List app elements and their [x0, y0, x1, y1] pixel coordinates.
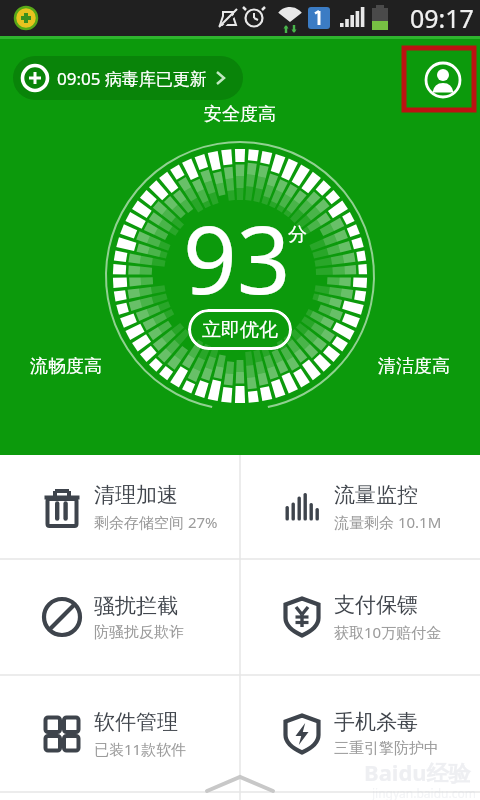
staticText: 流量监控: [334, 482, 418, 508]
staticText: 流量剩余 10.1M: [334, 512, 442, 532]
button[interactable]: 流量监控: [240, 455, 480, 559]
staticText: 骚扰拦截: [94, 593, 178, 619]
button[interactable]: 手机杀毒: [240, 675, 480, 792]
staticText: Baidu经验: [364, 757, 471, 787]
staticText: 立即优化: [202, 318, 278, 342]
staticText: 已装11款软件: [94, 739, 187, 759]
button[interactable]: 软件管理: [0, 675, 240, 792]
staticText: 清洁度高: [378, 355, 450, 378]
button[interactable]: 09:05 病毒库已更新: [13, 56, 243, 100]
button[interactable]: 支付保镖: [240, 559, 480, 675]
staticText: 09:05 病毒库已更新: [57, 67, 207, 90]
staticText: 分: [288, 223, 307, 247]
staticText: 93: [183, 194, 291, 322]
staticText: 09:17: [410, 1, 474, 35]
staticText: 三重引擎防护中: [334, 739, 439, 758]
staticText: 软件管理: [94, 709, 178, 735]
staticText: 防骚扰反欺诈: [94, 623, 184, 642]
staticText: jingyan.baidu.com: [372, 785, 476, 800]
staticText: 支付保镖: [334, 592, 418, 618]
button[interactable]: [402, 46, 476, 112]
staticText: 流畅度高: [30, 355, 102, 378]
button[interactable]: 立即优化: [188, 309, 292, 350]
button[interactable]: 骚扰拦截: [0, 559, 240, 675]
staticText: 获取10万赔付金: [334, 622, 442, 642]
staticText: 清理加速: [94, 482, 178, 508]
button[interactable]: 清理加速: [0, 455, 240, 559]
staticText: 安全度高: [204, 103, 276, 126]
staticText: 剩余存储空间 27%: [94, 512, 218, 532]
staticText: 手机杀毒: [334, 709, 418, 735]
